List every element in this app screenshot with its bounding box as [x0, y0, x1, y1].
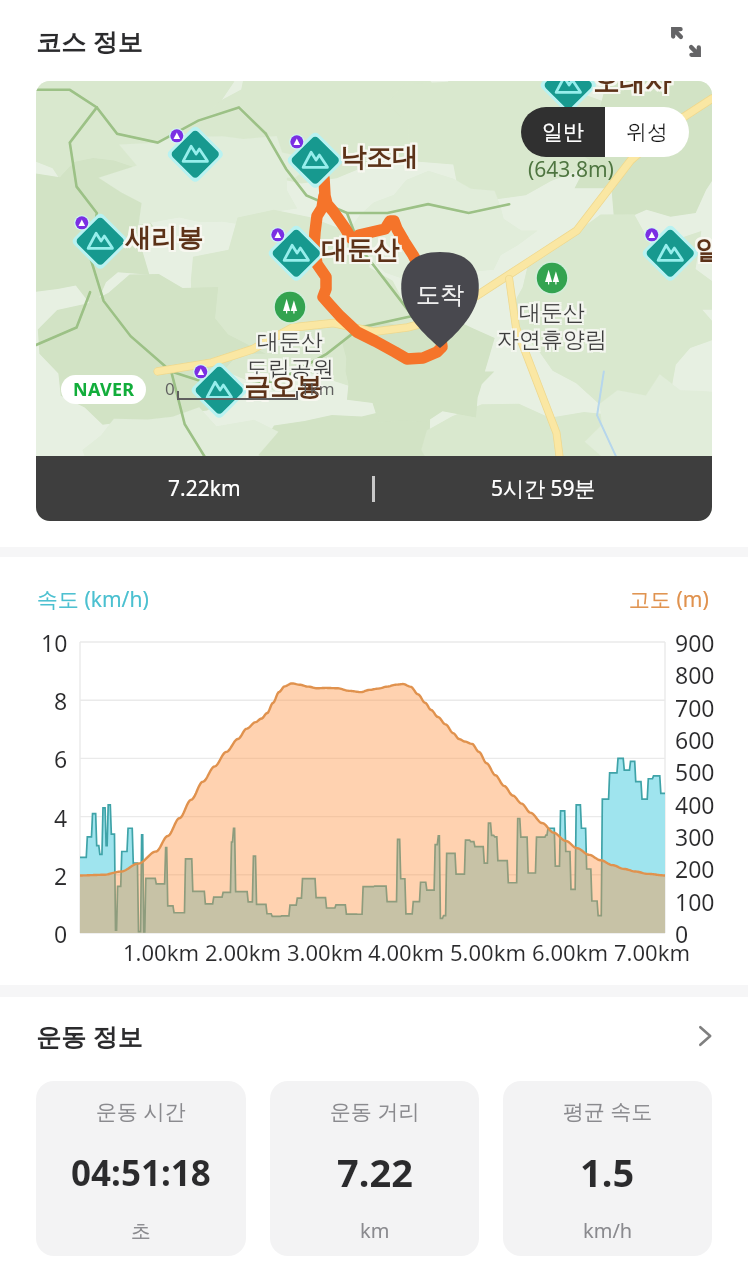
- staticText: 100: [675, 886, 715, 917]
- staticText: 04:51:18: [71, 1149, 211, 1197]
- staticText: 대둔산: [319, 234, 397, 267]
- staticText: 800: [675, 659, 715, 690]
- staticText: 400: [675, 789, 715, 820]
- staticText: 대둔산 자연휴양림: [477, 299, 627, 354]
- staticText: 오대사: [595, 81, 673, 101]
- staticText: 금오봉: [244, 371, 322, 404]
- staticText: 운동 정보: [36, 1019, 143, 1053]
- staticText: 대둔산: [323, 236, 401, 269]
- staticText: 대둔산 도립공원: [217, 328, 367, 383]
- staticText: 금오봉: [244, 369, 322, 402]
- staticText: 일: [695, 236, 712, 269]
- staticText: 낙조대: [342, 139, 420, 172]
- staticText: 대둔산 자연휴양림: [479, 301, 629, 356]
- staticText: 5.00km: [450, 937, 526, 967]
- staticText: 새리봉: [123, 222, 201, 255]
- staticText: 대둔산 도립공원: [215, 326, 365, 381]
- staticText: 새리봉: [125, 224, 203, 257]
- staticText: 대둔산 도립공원: [213, 330, 363, 385]
- staticText: 일: [693, 234, 712, 267]
- staticText: 대둔산 도립공원: [213, 326, 363, 381]
- staticText: 대둔산: [319, 232, 397, 265]
- staticText: 일반: [542, 119, 584, 145]
- staticText: 700: [675, 692, 715, 723]
- staticText: 금오봉: [246, 371, 324, 404]
- staticText: 1.5: [580, 1146, 635, 1198]
- staticText: 300: [675, 821, 715, 852]
- staticText: 오대사: [595, 81, 673, 99]
- staticText: 대둔산 도립공원: [217, 330, 367, 385]
- staticText: 대둔산 자연휴양림: [477, 297, 627, 352]
- staticText: 도착: [416, 280, 464, 310]
- staticText: 대둔산 자연휴양림: [479, 297, 629, 352]
- staticText: 600: [675, 724, 715, 755]
- staticText: 일: [695, 234, 712, 267]
- staticText: 5시간 59분: [491, 474, 596, 503]
- staticText: 새리봉: [127, 222, 205, 255]
- staticText: 낙조대: [340, 143, 418, 176]
- staticText: 금오봉: [242, 369, 320, 402]
- staticText: 일: [697, 232, 712, 265]
- staticText: 금오봉: [246, 373, 324, 406]
- staticText: 대둔산 자연휴양림: [479, 299, 629, 354]
- staticText: (643.8m): [528, 155, 614, 184]
- staticText: 새리봉: [127, 220, 205, 253]
- staticText: 1km: [300, 377, 335, 400]
- staticText: 대둔산 자연휴양림: [477, 301, 627, 356]
- button[interactable]: 대둔산 도립공원: [36, 81, 712, 521]
- staticText: 7.00km: [614, 937, 690, 967]
- staticText: 낙조대: [342, 143, 420, 176]
- staticText: 대둔산: [321, 232, 399, 265]
- staticText: 일: [695, 232, 712, 265]
- staticText: 금오봉: [242, 371, 320, 404]
- staticText: 낙조대: [340, 139, 418, 172]
- staticText: 200: [675, 853, 715, 884]
- button[interactable]: 운동 거리: [270, 1081, 479, 1256]
- staticText: km/h: [583, 1217, 633, 1244]
- staticText: 0: [54, 918, 68, 949]
- staticText: 일: [697, 234, 712, 267]
- button[interactable]: 운동 정보: [0, 1005, 748, 1067]
- staticText: 대둔산 자연휴양림: [475, 297, 625, 352]
- staticText: 3.00km: [287, 937, 363, 967]
- staticText: 오대사: [593, 81, 671, 97]
- button[interactable]: Expand map to full screen: [661, 17, 711, 67]
- staticText: 오대사: [593, 81, 671, 101]
- button[interactable]: 평균 속도: [503, 1081, 712, 1256]
- staticText: 운동 거리: [330, 1097, 420, 1126]
- staticText: 10: [41, 627, 68, 658]
- staticText: 오대사: [591, 81, 669, 101]
- staticText: 새리봉: [125, 220, 203, 253]
- button[interactable]: 일반: [521, 107, 605, 157]
- staticText: 0: [675, 918, 689, 949]
- staticText: 대둔산 도립공원: [213, 328, 363, 383]
- staticText: 6: [54, 743, 68, 774]
- staticText: 500: [675, 756, 715, 787]
- staticText: 대둔산: [319, 236, 397, 269]
- staticText: NAVER: [73, 377, 135, 402]
- staticText: 오대사: [591, 81, 669, 97]
- staticText: 8: [54, 685, 68, 716]
- button[interactable]: 운동 시간: [36, 1081, 246, 1256]
- staticText: 대둔산 도립공원: [217, 326, 367, 381]
- staticText: 대둔산: [323, 234, 401, 267]
- staticText: 2.00km: [205, 937, 281, 967]
- staticText: 금오봉: [246, 369, 324, 402]
- staticText: 대둔산 도립공원: [215, 328, 365, 383]
- button[interactable]: 위성: [605, 107, 689, 157]
- staticText: 금오봉: [242, 373, 320, 406]
- staticText: 일: [693, 232, 712, 265]
- staticText: 오대사: [595, 81, 673, 97]
- staticText: 낙조대: [342, 141, 420, 174]
- staticText: 오대사: [593, 81, 671, 99]
- staticText: 속도 (km/h): [37, 585, 149, 614]
- staticText: 낙조대: [338, 139, 416, 172]
- staticText: 일: [693, 236, 712, 269]
- staticText: 7.22: [337, 1146, 413, 1198]
- staticText: 대둔산: [321, 234, 399, 267]
- staticText: 금오봉: [244, 373, 322, 406]
- staticText: 고도 (m): [629, 585, 709, 614]
- staticText: 1.00km: [123, 937, 199, 967]
- staticText: 대둔산: [323, 232, 401, 265]
- staticText: 낙조대: [338, 141, 416, 174]
